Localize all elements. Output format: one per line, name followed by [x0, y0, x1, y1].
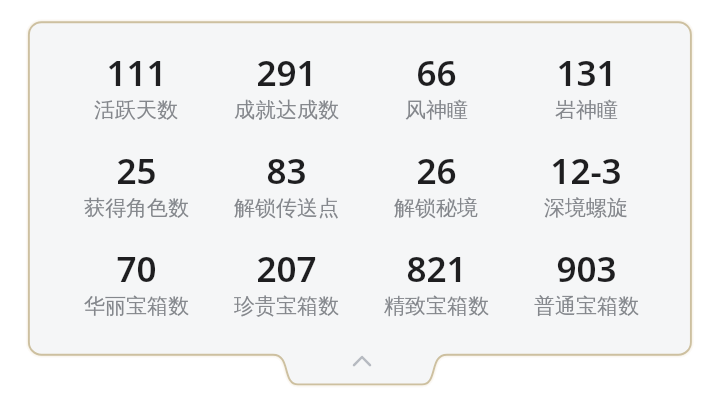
staticText: 精致宝箱数: [384, 293, 489, 319]
staticText: 普通宝箱数: [534, 293, 639, 319]
staticText: 903: [556, 245, 617, 293]
staticText: 华丽宝箱数: [84, 293, 189, 319]
staticText: 83: [266, 147, 307, 195]
staticText: 70: [116, 245, 157, 293]
staticText: 获得角色数: [84, 195, 189, 221]
staticText: 风神瞳: [405, 97, 468, 123]
staticText: 岩神瞳: [555, 97, 618, 123]
staticText: 解锁秘境: [394, 195, 478, 221]
staticText: 26: [416, 147, 457, 195]
staticText: 821: [406, 245, 467, 293]
staticText: 珍贵宝箱数: [234, 293, 339, 319]
staticText: 12-3: [550, 147, 622, 195]
staticText: 深境螺旋: [544, 195, 628, 221]
staticText: 207: [256, 245, 317, 293]
staticText: 解锁传送点: [234, 195, 339, 221]
staticText: 活跃天数: [94, 97, 178, 123]
staticText: 291: [256, 49, 317, 97]
button[interactable]: Collapse statistics: [273, 347, 447, 385]
staticText: 111: [106, 49, 167, 97]
staticText: 131: [556, 49, 617, 97]
staticText: 25: [116, 147, 157, 195]
staticText: 成就达成数: [234, 97, 339, 123]
staticText: 66: [416, 49, 457, 97]
